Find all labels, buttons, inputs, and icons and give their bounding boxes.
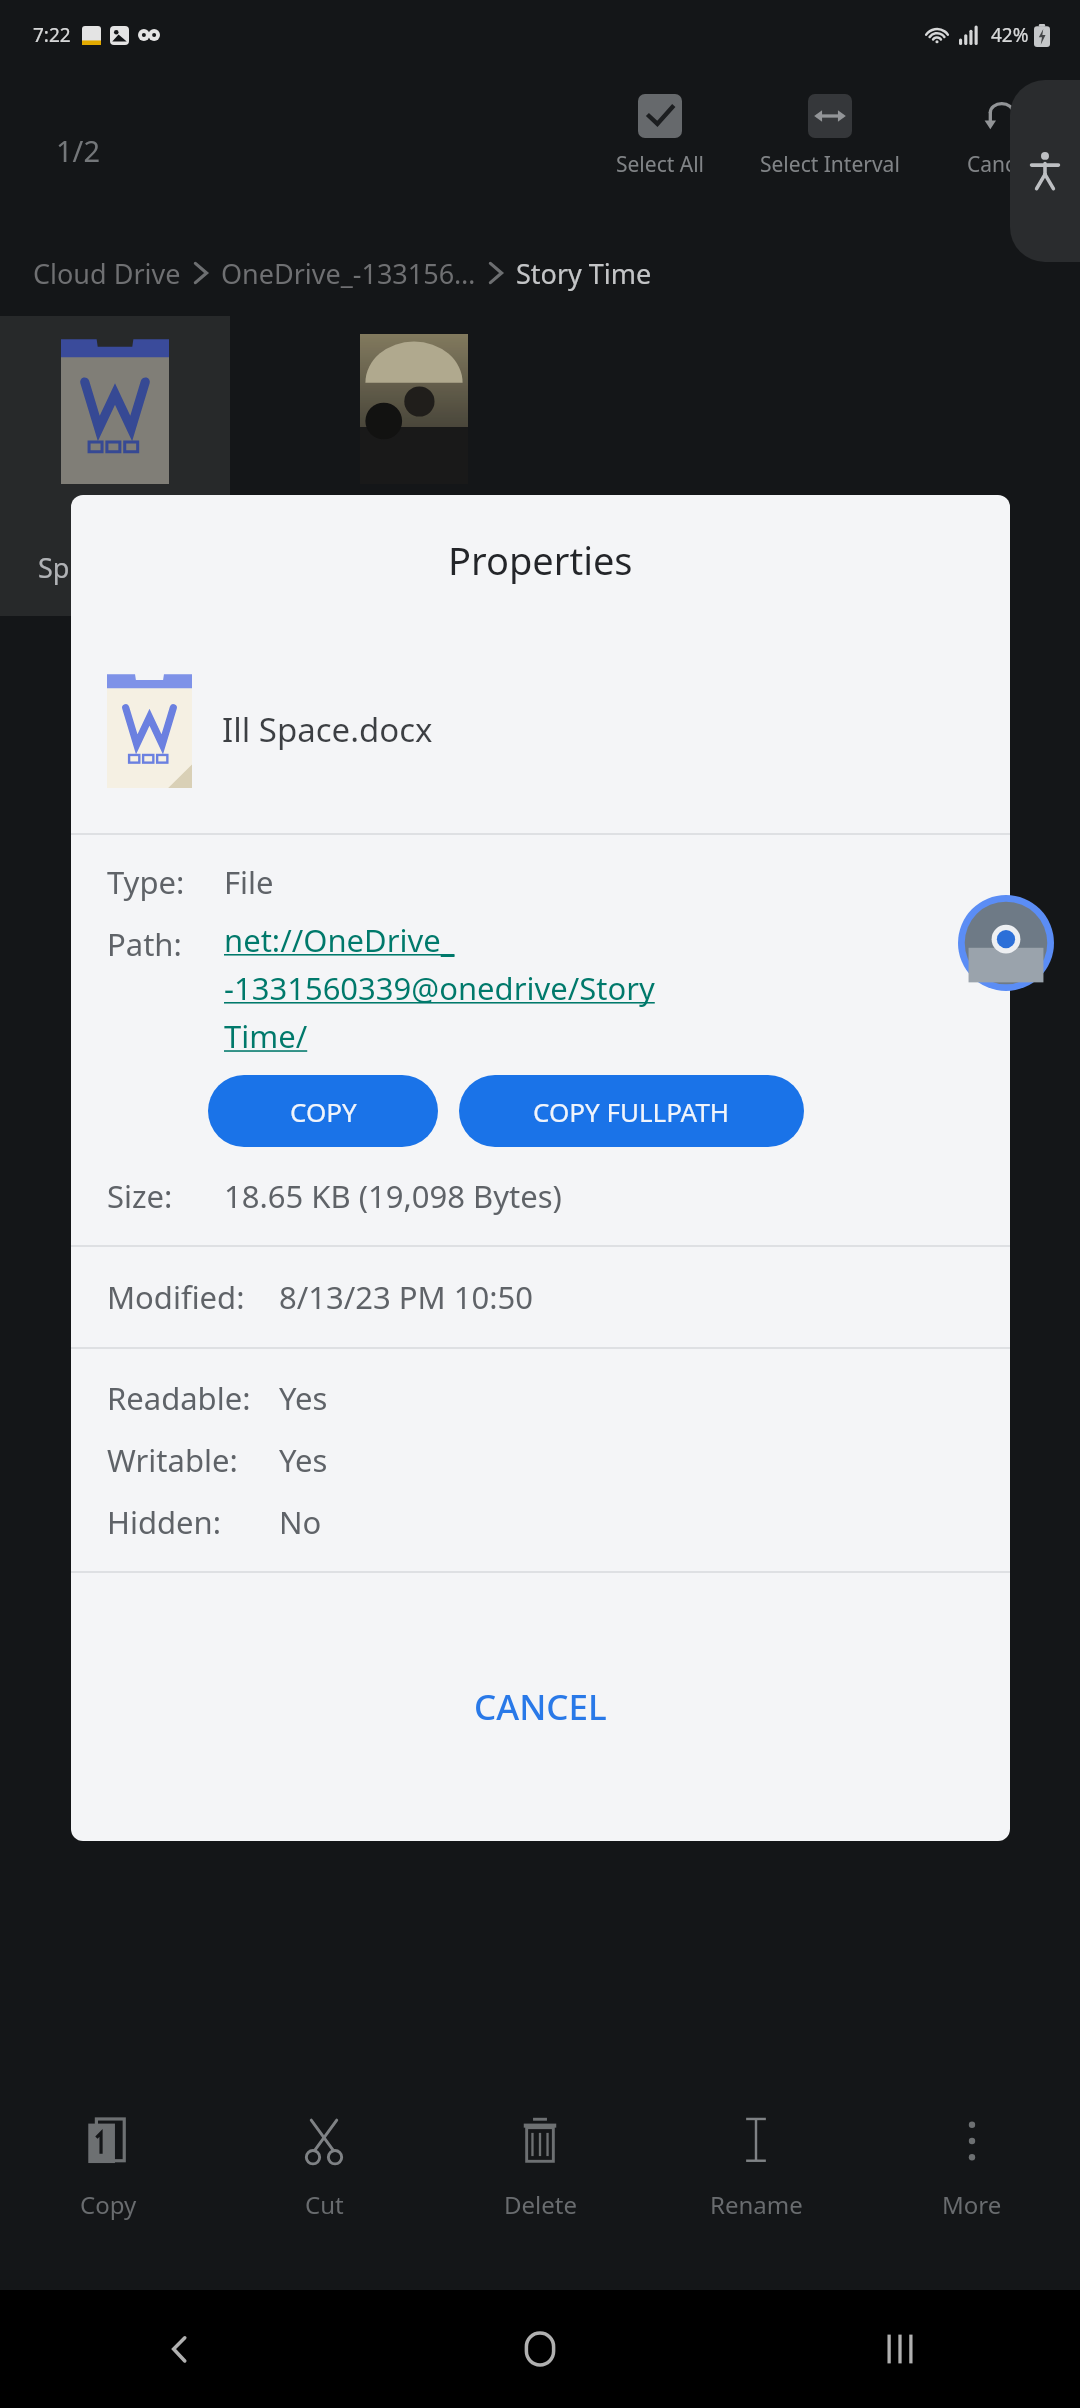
staticText: Delete bbox=[504, 2188, 577, 2221]
button[interactable]: Cut bbox=[216, 2082, 432, 2290]
staticText: More bbox=[942, 2188, 1002, 2221]
staticText: 8/13/23 PM 10:50 bbox=[279, 1276, 533, 1318]
staticText: Ill Space.docx bbox=[222, 707, 433, 752]
button[interactable]: Screen recorder bbox=[958, 895, 1054, 991]
staticText: net://OneDrive_ -1331560339@onedrive/Sto… bbox=[224, 919, 655, 1057]
staticText: Cancel bbox=[967, 150, 1033, 179]
staticText: Writable: bbox=[107, 1439, 279, 1481]
staticText: Yes bbox=[279, 1439, 328, 1481]
button[interactable]: More bbox=[864, 2082, 1080, 2290]
button[interactable]: OneDrive_-133156… bbox=[221, 255, 476, 292]
button[interactable]: Back bbox=[0, 2290, 360, 2408]
staticText: Yes bbox=[279, 1377, 328, 1419]
button[interactable]: Accessibility bbox=[1010, 80, 1080, 262]
staticText: CANCEL bbox=[474, 1683, 607, 1731]
staticText: Sp bbox=[38, 549, 70, 586]
button[interactable]: net://OneDrive_ -1331560339@onedrive/Sto… bbox=[224, 919, 655, 1057]
button[interactable]: Rename bbox=[648, 2082, 864, 2290]
staticText: Select Interval bbox=[760, 150, 900, 179]
staticText: 1/2 bbox=[56, 131, 100, 170]
button[interactable]: Cloud Drive bbox=[33, 255, 181, 292]
button[interactable]: COPY bbox=[208, 1075, 438, 1147]
button[interactable]: Delete bbox=[432, 2082, 648, 2290]
staticText: Readable: bbox=[107, 1377, 279, 1419]
button[interactable]: CANCEL bbox=[71, 1573, 1010, 1841]
button[interactable]: Select All bbox=[590, 88, 730, 185]
staticText: Modified: bbox=[107, 1276, 279, 1318]
staticText: Copy bbox=[80, 2188, 137, 2221]
staticText: Cut bbox=[305, 2188, 344, 2221]
staticText: Rename bbox=[710, 2188, 803, 2221]
staticText: Path: bbox=[107, 923, 224, 965]
staticText: 18.65 KB (19,098 Bytes) bbox=[224, 1175, 562, 1217]
staticText: Select All bbox=[616, 150, 705, 179]
button[interactable]: Recent apps bbox=[720, 2290, 1080, 2408]
staticText: 7:22 bbox=[33, 22, 71, 48]
staticText: COPY FULLPATH bbox=[533, 1094, 730, 1129]
button[interactable]: Story Time bbox=[516, 255, 652, 292]
button[interactable]: Home bbox=[360, 2290, 720, 2408]
staticText: Properties bbox=[448, 534, 633, 586]
staticText: COPY bbox=[290, 1094, 357, 1129]
button[interactable]: COPY FULLPATH bbox=[459, 1075, 804, 1147]
staticText: Type: bbox=[107, 861, 224, 903]
staticText: Hidden: bbox=[107, 1501, 279, 1543]
staticText: File bbox=[224, 861, 274, 903]
staticText: Size: bbox=[107, 1175, 224, 1217]
button[interactable]: Copy bbox=[0, 2082, 216, 2290]
button[interactable]: Select Interval bbox=[730, 88, 930, 185]
staticText: No bbox=[279, 1501, 322, 1543]
staticText: 42% bbox=[991, 22, 1029, 48]
button[interactable]: Cancel bbox=[930, 88, 1070, 185]
